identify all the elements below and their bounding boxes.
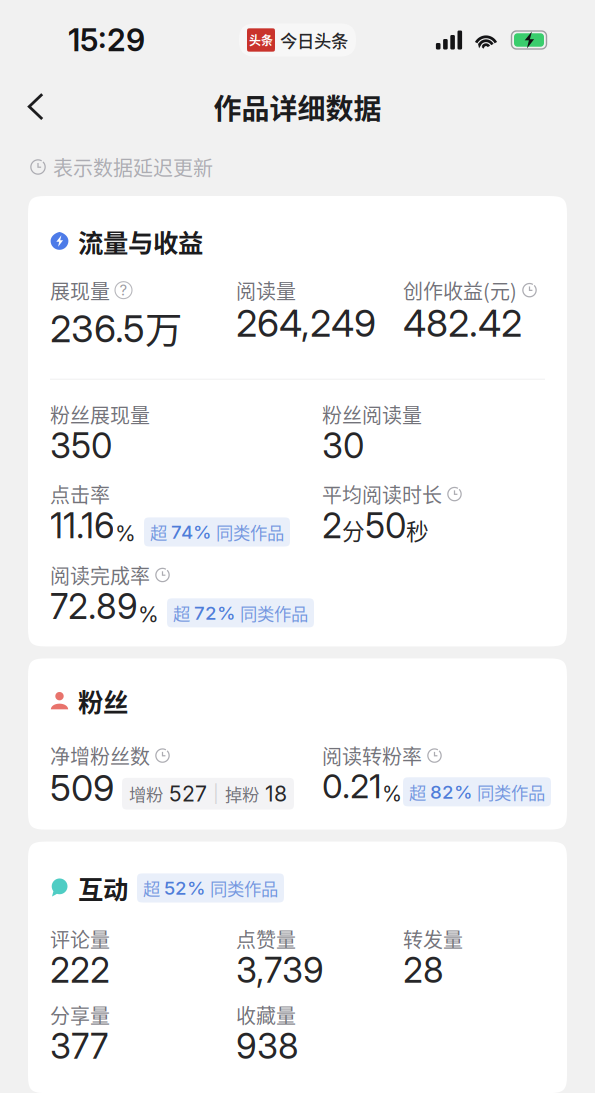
staticText: 作品详细数据 <box>213 87 381 127</box>
staticText: 掉粉 <box>225 781 259 806</box>
staticText: 今日头条 <box>280 27 348 53</box>
staticText: 阅读量 <box>236 276 296 305</box>
staticText: 秒 <box>406 514 429 546</box>
staticText: 15:29 <box>68 21 145 58</box>
staticText: 938 <box>236 1025 299 1067</box>
staticText: 点赞量 <box>236 924 296 953</box>
staticText: 粉丝展现量 <box>50 400 150 429</box>
staticText: 3,739 <box>236 949 324 991</box>
staticText: % <box>115 520 136 546</box>
staticText: 82% <box>430 781 473 803</box>
staticText: 超 <box>409 779 426 804</box>
staticText: 72% <box>194 602 236 624</box>
staticText: 超 <box>143 875 160 900</box>
staticText: 同类作品 <box>240 600 308 625</box>
staticText: 350 <box>50 425 112 467</box>
staticText: 分 <box>342 514 365 546</box>
staticText: 18 <box>265 781 287 807</box>
staticText: 阅读转粉率 <box>322 741 422 770</box>
staticText: 转发量 <box>403 924 463 953</box>
staticText: 评论量 <box>50 924 110 953</box>
staticText: 2 <box>322 505 342 546</box>
staticText: 264,249 <box>236 301 376 346</box>
staticText: % <box>138 601 159 627</box>
staticText: 52% <box>164 877 206 899</box>
staticText: 流量与收益 <box>78 223 203 260</box>
staticText: 72.89 <box>50 585 138 627</box>
button[interactable]: Back <box>14 82 59 132</box>
staticText: 创作收益(元) <box>403 276 517 305</box>
staticText: % <box>382 781 402 806</box>
staticText: 超 <box>150 519 167 544</box>
staticText: 表示数据延迟更新 <box>53 152 213 181</box>
staticText: | <box>213 783 219 804</box>
staticText: 236.5万 <box>50 301 182 355</box>
staticText: 阅读完成率 <box>50 560 150 589</box>
staticText: 净增粉丝数 <box>50 741 150 770</box>
staticText: 同类作品 <box>216 519 284 544</box>
staticText: 482.42 <box>403 301 522 346</box>
staticText: 展现量 <box>50 276 110 305</box>
staticText: 平均阅读时长 <box>322 480 442 509</box>
staticText: 收藏量 <box>236 1000 296 1029</box>
staticText: 74% <box>171 521 212 543</box>
staticText: 超 <box>173 600 190 625</box>
staticText: 50 <box>365 505 406 546</box>
staticText: 分享量 <box>50 1000 110 1029</box>
staticText: 粉丝 <box>78 682 128 719</box>
staticText: 0.21 <box>322 766 382 806</box>
staticText: 头条 <box>249 31 273 49</box>
staticText: 点击率 <box>50 480 110 509</box>
staticText: 509 <box>50 766 114 810</box>
staticText: 同类作品 <box>477 779 545 804</box>
staticText: 互动 <box>78 870 128 906</box>
staticText: ? <box>119 281 127 299</box>
staticText: 30 <box>322 425 364 467</box>
staticText: 527 <box>169 781 207 807</box>
staticText: 粉丝阅读量 <box>322 400 422 429</box>
staticText: 28 <box>403 949 444 991</box>
staticText: 增粉 <box>129 781 163 806</box>
staticText: 同类作品 <box>210 875 278 900</box>
staticText: 222 <box>50 949 110 991</box>
staticText: 377 <box>50 1025 108 1067</box>
staticText: 11.16 <box>50 505 115 546</box>
